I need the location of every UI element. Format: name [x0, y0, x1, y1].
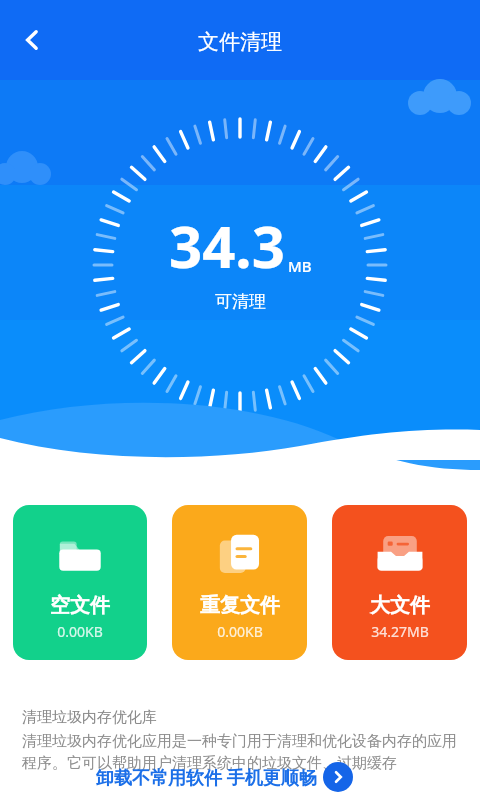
staticText: 清理垃圾内存优化应用是一种专门用于清理和优化设备内存的应用程序。它可以帮助用户清…: [22, 732, 464, 773]
button[interactable]: 重复文件: [172, 505, 307, 660]
staticText: 0.00KB: [217, 622, 263, 641]
button[interactable]: 空文件: [13, 505, 147, 660]
staticText: 34.3: [169, 206, 285, 285]
other: Go: [323, 762, 353, 792]
button[interactable]: 大文件: [332, 505, 467, 660]
staticText: 文件清理: [198, 29, 282, 55]
staticText: 空文件: [50, 593, 110, 618]
button[interactable]: 卸载不常用软件 手机更顺畅: [96, 762, 353, 792]
staticText: MB: [288, 256, 312, 276]
staticText: 34.27MB: [371, 622, 429, 641]
staticText: 大文件: [370, 593, 430, 618]
staticText: 清理垃圾内存优化库: [22, 708, 157, 727]
staticText: 重复文件: [200, 593, 280, 618]
staticText: 可清理: [215, 291, 266, 312]
button[interactable]: Back: [6, 14, 58, 66]
staticText: 卸载不常用软件 手机更顺畅: [96, 765, 317, 790]
staticText: 0.00KB: [57, 622, 103, 641]
